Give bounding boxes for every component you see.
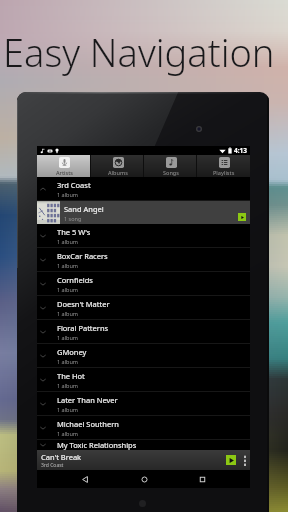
button[interactable]: Songs bbox=[144, 155, 197, 177]
button[interactable]: Home bbox=[133, 470, 155, 488]
staticText: Sand Angel bbox=[64, 204, 104, 214]
staticText: The Hot bbox=[57, 371, 85, 381]
staticText: 1 album bbox=[57, 406, 79, 413]
button[interactable]: Can't Break bbox=[37, 450, 250, 470]
button[interactable]: Play bbox=[238, 213, 246, 221]
staticText: My Toxic Relationships bbox=[57, 440, 137, 450]
staticText: Michael Southern bbox=[57, 419, 119, 429]
staticText: Later Than Never bbox=[57, 395, 118, 405]
staticText: Easy Navigation bbox=[3, 26, 275, 78]
staticText: Playlists bbox=[213, 169, 235, 176]
staticText: Songs bbox=[163, 169, 179, 176]
staticText: 1 album bbox=[57, 286, 79, 293]
button[interactable]: Back bbox=[74, 470, 96, 488]
button[interactable]: Floral Patterns bbox=[37, 320, 250, 343]
button[interactable]: Playlists bbox=[197, 155, 250, 177]
staticText: BoxCar Racers bbox=[57, 251, 108, 261]
button[interactable]: The 5 W's bbox=[37, 224, 250, 247]
button[interactable]: Michael Southern bbox=[37, 416, 250, 439]
button[interactable]: Sand Angel bbox=[37, 201, 250, 224]
button[interactable]: Play bbox=[226, 455, 236, 465]
staticText: 3rd Coast bbox=[41, 462, 64, 469]
staticText: 3rd Coast bbox=[57, 180, 91, 190]
staticText: Albums bbox=[108, 169, 128, 176]
staticText: 1 album bbox=[57, 430, 79, 437]
staticText: 1 album bbox=[57, 382, 79, 389]
staticText: Artists bbox=[56, 169, 73, 176]
button[interactable]: Artists bbox=[37, 155, 91, 177]
staticText: Floral Patterns bbox=[57, 323, 109, 333]
staticText: 1 album bbox=[57, 191, 79, 198]
staticText: Can't Break bbox=[41, 452, 82, 462]
staticText: 1 album bbox=[57, 334, 79, 341]
button[interactable]: Later Than Never bbox=[37, 392, 250, 415]
staticText: Cornfields bbox=[57, 275, 93, 285]
button[interactable]: More options bbox=[241, 450, 248, 470]
button[interactable]: Cornfields bbox=[37, 272, 250, 295]
button[interactable]: Recent apps bbox=[191, 470, 213, 488]
button[interactable]: Doesn't Matter bbox=[37, 296, 250, 319]
staticText: GMoney bbox=[57, 347, 87, 357]
button[interactable]: BoxCar Racers bbox=[37, 248, 250, 271]
staticText: 1 album bbox=[57, 310, 79, 317]
staticText: 1 song bbox=[64, 215, 82, 222]
staticText: 1 album bbox=[57, 358, 79, 365]
staticText: 4:13 bbox=[234, 146, 247, 155]
button[interactable]: The Hot bbox=[37, 368, 250, 391]
button[interactable]: My Toxic Relationships bbox=[37, 440, 250, 450]
button[interactable]: GMoney bbox=[37, 344, 250, 367]
button[interactable]: Albums bbox=[91, 155, 144, 177]
staticText: Doesn't Matter bbox=[57, 299, 110, 309]
staticText: 1 album bbox=[57, 238, 79, 245]
staticText: 1 album bbox=[57, 262, 79, 269]
button[interactable]: 3rd Coast bbox=[37, 177, 250, 200]
staticText: The 5 W's bbox=[57, 227, 91, 237]
